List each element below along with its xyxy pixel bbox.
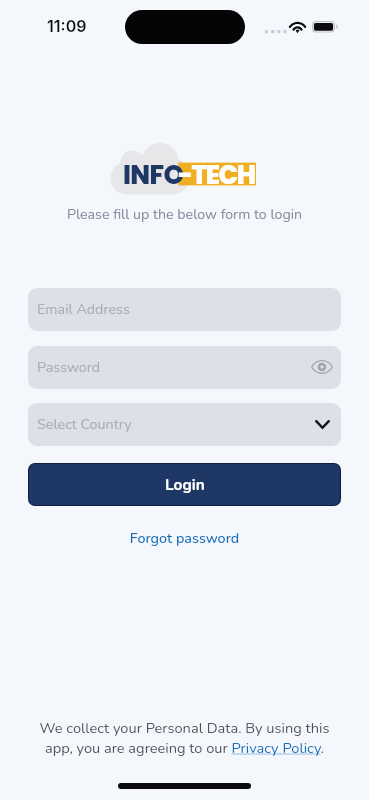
button[interactable]: Show password [309,354,335,380]
staticText: Email Address [37,300,130,320]
staticText: -TECH [178,157,255,193]
staticText: Select Country [37,415,132,435]
staticText: 11:09 [47,16,87,35]
staticText: Login [165,474,205,495]
button[interactable]: Open country dropdown [309,411,335,437]
button[interactable]: Password [28,346,341,389]
staticText: We collect your Personal Data. By using … [30,718,339,758]
button[interactable]: Email Address [28,288,341,331]
button[interactable]: Forgot password [28,525,341,553]
staticText: INFO [123,157,184,193]
staticText: Please fill up the below form to login [0,205,369,224]
button[interactable]: Select Country [28,403,341,446]
staticText: Password [37,358,101,378]
button[interactable]: Login [29,464,340,505]
